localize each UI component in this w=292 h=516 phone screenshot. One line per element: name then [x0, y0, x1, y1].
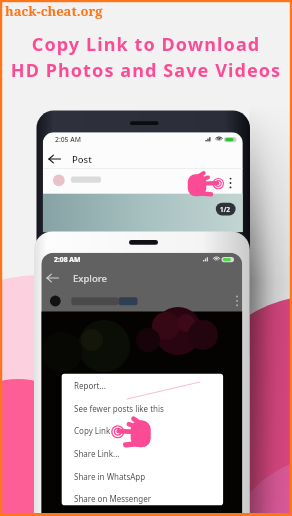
staticText: See fewer posts like this: [74, 403, 164, 414]
staticText: HD Photos and Save Videos: [0, 58, 292, 516]
staticText: Report...: [74, 380, 106, 391]
staticText: Copy Link to Download: [0, 32, 292, 516]
button[interactable]: See fewer posts like this: [62, 397, 223, 419]
button[interactable]: Post: [43, 148, 243, 168]
staticText: Post: [72, 153, 92, 166]
button[interactable]: Explore: [41, 267, 242, 287]
button[interactable]: Share in WhatsApp: [62, 465, 223, 487]
staticText: Explore: [73, 272, 107, 285]
staticText: 2:08 AM: [54, 255, 81, 264]
button[interactable]: Share Link...: [62, 442, 223, 464]
staticText: Share on Messenger: [74, 493, 152, 504]
staticText: Share in WhatsApp: [74, 471, 146, 482]
staticText: Share Link...: [74, 448, 120, 459]
staticText: 1/2: [220, 205, 230, 214]
button[interactable]: Report...: [62, 374, 223, 396]
button[interactable]: Share on Messenger: [62, 487, 223, 509]
staticText: 2:05 AM: [55, 135, 81, 144]
staticText: hack-cheat.org: [5, 2, 103, 20]
staticText: Copy Link: [74, 425, 111, 436]
button[interactable]: Copy Link: [62, 419, 223, 441]
